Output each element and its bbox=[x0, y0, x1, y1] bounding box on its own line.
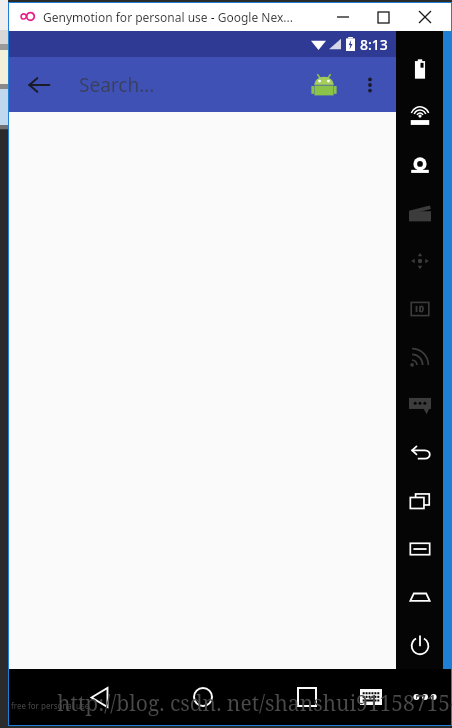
button[interactable]: Navigate up bbox=[17, 63, 61, 107]
staticText: free for personal use bbox=[11, 700, 90, 711]
button[interactable]: Home bbox=[396, 573, 443, 621]
button[interactable]: Maximize bbox=[363, 3, 403, 31]
button[interactable]: More bbox=[403, 675, 447, 719]
button[interactable]: Back bbox=[396, 429, 443, 477]
button[interactable]: Battery bbox=[396, 45, 443, 93]
button[interactable]: Camera bbox=[396, 141, 443, 189]
button[interactable]: Home bbox=[179, 673, 227, 721]
button[interactable]: Screen recorder bbox=[396, 189, 443, 237]
button[interactable]: Accelerometer bbox=[396, 237, 443, 285]
staticText: Search... bbox=[79, 72, 155, 98]
button[interactable]: More options bbox=[350, 65, 390, 105]
staticText: 8:13 bbox=[360, 35, 388, 54]
staticText: http://blog. csdn. net/shanshui911587154 bbox=[57, 689, 452, 718]
button[interactable]: Keyboard bbox=[349, 675, 393, 719]
button[interactable]: Menu bbox=[396, 525, 443, 573]
button[interactable]: Power bbox=[396, 621, 443, 669]
button[interactable]: Back bbox=[75, 673, 123, 721]
button[interactable]: Recent apps bbox=[283, 673, 331, 721]
button[interactable]: SMS bbox=[396, 381, 443, 429]
button[interactable]: GPS bbox=[396, 93, 443, 141]
button[interactable]: Close bbox=[403, 3, 447, 31]
button[interactable]: Android bbox=[302, 63, 346, 107]
staticText: Genymotion for personal use - Google Nex… bbox=[43, 9, 293, 25]
button[interactable]: Network bbox=[396, 333, 443, 381]
button[interactable]: Minimize bbox=[323, 3, 363, 31]
button[interactable]: Search... bbox=[79, 57, 302, 112]
button[interactable]: Identifiers bbox=[396, 285, 443, 333]
button[interactable]: Recents bbox=[396, 477, 443, 525]
